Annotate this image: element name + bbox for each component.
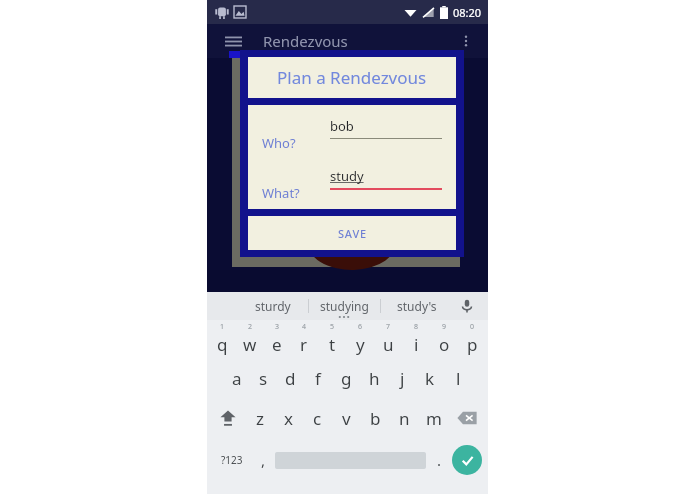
staticText: r <box>300 333 308 356</box>
staticText: e <box>272 333 282 356</box>
staticText: a <box>232 367 242 390</box>
button[interactable]: 7 <box>374 320 402 358</box>
button[interactable]: 2 <box>236 320 263 358</box>
staticText: q <box>217 333 228 356</box>
staticText: p <box>467 333 478 356</box>
staticText: t <box>329 333 336 356</box>
button[interactable]: Done <box>452 445 482 475</box>
staticText: l <box>456 367 461 390</box>
staticText: f <box>315 367 321 390</box>
staticText: w <box>243 333 257 356</box>
staticText: Rendezvous <box>263 31 348 51</box>
button[interactable]: b <box>361 398 390 438</box>
button[interactable]: SAVE <box>248 216 456 250</box>
staticText: d <box>285 367 296 390</box>
button[interactable]: v <box>332 398 361 438</box>
button[interactable]: j <box>388 358 416 398</box>
staticText: y <box>356 333 365 356</box>
button[interactable]: 5 <box>318 320 346 358</box>
button[interactable]: 9 <box>430 320 458 358</box>
button[interactable]: 0 <box>458 320 486 358</box>
staticText: 3 <box>275 322 280 332</box>
button[interactable]: a <box>223 358 250 398</box>
staticText: h <box>369 367 380 390</box>
button[interactable]: ?123 <box>213 438 251 482</box>
staticText: b <box>370 407 381 430</box>
button[interactable]: f <box>304 358 332 398</box>
staticText: k <box>425 367 435 390</box>
button[interactable]: c <box>303 398 332 438</box>
staticText: v <box>342 407 351 430</box>
staticText: m <box>426 407 442 430</box>
staticText: studying <box>320 298 369 314</box>
button[interactable]: Shift <box>209 398 246 438</box>
staticText: 08:20 <box>453 5 482 20</box>
staticText: n <box>399 407 410 430</box>
staticText: z <box>256 407 264 430</box>
staticText: study's <box>397 298 437 314</box>
staticText: 8 <box>414 322 419 332</box>
button[interactable]: d <box>277 358 304 398</box>
button[interactable]: 6 <box>346 320 374 358</box>
button[interactable]: 3 <box>263 320 290 358</box>
staticText: bob <box>330 117 354 135</box>
staticText: j <box>400 367 405 390</box>
button[interactable]: bob <box>330 117 442 139</box>
staticText: 1 <box>220 322 225 332</box>
staticText: sturdy <box>255 298 291 314</box>
staticText: . <box>437 450 442 470</box>
staticText: 7 <box>386 322 391 332</box>
staticText: s <box>259 367 268 390</box>
staticText: c <box>313 407 322 430</box>
button[interactable]: 1 <box>209 320 236 358</box>
button[interactable]: z <box>246 398 274 438</box>
staticText: 9 <box>442 322 447 332</box>
button[interactable]: More options <box>454 29 478 53</box>
staticText: 0 <box>470 322 475 332</box>
staticText: ?123 <box>221 453 243 467</box>
staticText: 4 <box>302 322 307 332</box>
staticText: , <box>261 450 266 470</box>
staticText: Who? <box>262 134 296 152</box>
button[interactable]: k <box>416 358 444 398</box>
button[interactable]: x <box>274 398 303 438</box>
staticText: i <box>414 333 419 356</box>
button[interactable]: l <box>444 358 472 398</box>
button[interactable]: 4 <box>290 320 318 358</box>
button[interactable]: study's <box>381 292 452 320</box>
button[interactable]: studying <box>309 292 380 320</box>
button[interactable]: 8 <box>402 320 430 358</box>
button[interactable]: m <box>419 398 448 438</box>
staticText: 6 <box>358 322 363 332</box>
button[interactable]: Backspace <box>448 398 486 438</box>
button[interactable]: sturdy <box>237 292 308 320</box>
button[interactable]: , <box>251 438 275 482</box>
staticText: Plan a Rendezvous <box>277 66 427 89</box>
button[interactable]: g <box>332 358 360 398</box>
staticText: 2 <box>248 322 253 332</box>
button[interactable]: Open navigation menu <box>221 29 245 53</box>
button[interactable]: study <box>330 167 442 190</box>
staticText: study <box>330 167 364 185</box>
staticText: 5 <box>330 322 335 332</box>
staticText: x <box>284 407 293 430</box>
button[interactable]: h <box>360 358 388 398</box>
staticText: What? <box>262 184 300 202</box>
button[interactable]: Voice input <box>452 292 482 320</box>
staticText: o <box>439 333 450 356</box>
button[interactable]: . <box>426 438 452 482</box>
button[interactable]: n <box>390 398 419 438</box>
staticText: u <box>383 333 394 356</box>
staticText: SAVE <box>338 226 367 241</box>
button[interactable]: s <box>250 358 277 398</box>
staticText: g <box>341 367 352 390</box>
